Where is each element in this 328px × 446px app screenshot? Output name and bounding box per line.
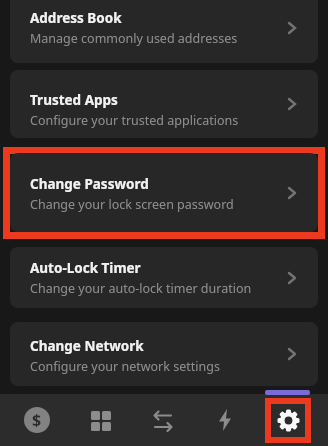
button[interactable]: Trusted Apps <box>10 70 318 138</box>
staticText: Change your auto-lock timer duration <box>30 280 252 297</box>
button[interactable] <box>277 409 300 432</box>
staticText: Manage commonly used addresses <box>30 30 238 47</box>
staticText: Change Password <box>30 175 149 193</box>
staticText: Configure your network settings <box>30 358 220 375</box>
button[interactable] <box>91 411 111 431</box>
staticText: Configure your trusted applications <box>30 112 239 129</box>
staticText: Change your lock screen password <box>30 196 234 213</box>
button[interactable]: Address Book <box>10 0 318 63</box>
staticText: $ <box>32 409 42 431</box>
staticText: Trusted Apps <box>30 91 118 109</box>
staticText: Address Book <box>30 9 122 27</box>
button[interactable]: Change Network <box>10 322 318 386</box>
staticText: Change Network <box>30 337 144 355</box>
staticText: Auto-Lock Timer <box>30 259 141 277</box>
button[interactable]: $ <box>24 407 50 433</box>
button[interactable] <box>218 409 232 431</box>
button[interactable] <box>151 408 175 432</box>
button[interactable]: Auto-Lock Timer <box>10 247 318 308</box>
button[interactable]: Change Password <box>10 153 318 232</box>
